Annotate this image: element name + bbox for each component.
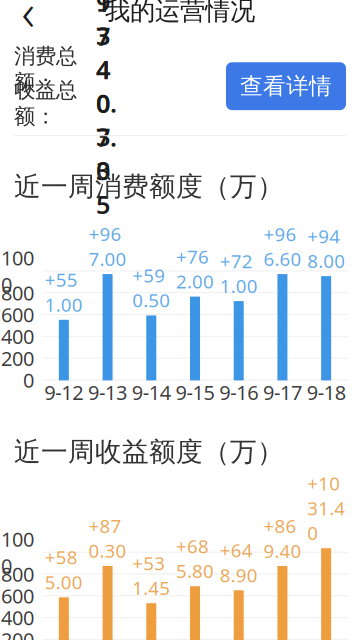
staticText: 600 — [1, 301, 34, 328]
staticText: +685.80 — [176, 534, 214, 583]
staticText: 消费总额： — [14, 43, 77, 95]
staticText: +590.50 — [132, 263, 170, 312]
staticText: +1031.40 — [307, 471, 345, 545]
staticText: 9-18 — [307, 379, 346, 405]
staticText: 0 — [23, 367, 34, 393]
staticText: ‹ — [21, 0, 34, 45]
staticText: 9-17 — [263, 379, 302, 405]
staticText: 1000 — [1, 244, 34, 297]
staticText: 我的运营情况 — [105, 0, 255, 27]
staticText: 近一周收益额度（万） — [14, 435, 284, 468]
staticText: +721.00 — [220, 248, 258, 298]
staticText: 800 — [1, 561, 34, 587]
staticText: 200 — [1, 345, 34, 371]
staticText: 收益总额： — [14, 77, 77, 129]
staticText: +869.40 — [263, 513, 301, 563]
staticText: 9-15 — [175, 379, 214, 405]
staticText: 9-16 — [219, 379, 258, 405]
staticText: 9-14 — [132, 379, 171, 405]
staticText: 400 — [1, 604, 34, 631]
button[interactable]: 返回 — [5, 0, 51, 33]
staticText: 17407.35 — [96, 0, 117, 221]
staticText: +966.60 — [263, 221, 301, 271]
staticText: 600 — [1, 582, 34, 609]
staticText: 200 — [1, 626, 34, 640]
staticText: 9-13 — [88, 379, 127, 405]
staticText: +762.00 — [176, 244, 214, 294]
staticText: +585.00 — [45, 545, 83, 594]
staticText: 800 — [1, 279, 34, 306]
staticText: +648.90 — [220, 538, 258, 587]
staticText: 19340.30 — [96, 0, 117, 187]
staticText: 查看详情 — [240, 72, 332, 100]
staticText: 400 — [1, 323, 34, 350]
staticText: +870.30 — [89, 513, 127, 563]
staticText: 1000 — [1, 526, 34, 579]
staticText: +967.00 — [89, 221, 127, 271]
staticText: +531.45 — [132, 551, 170, 600]
button[interactable]: 查看详情 — [226, 62, 346, 110]
staticText: 9-12 — [44, 379, 83, 405]
staticText: +948.00 — [307, 224, 345, 273]
staticText: 近一周消费额度（万） — [14, 170, 284, 203]
staticText: +551.00 — [45, 267, 83, 317]
